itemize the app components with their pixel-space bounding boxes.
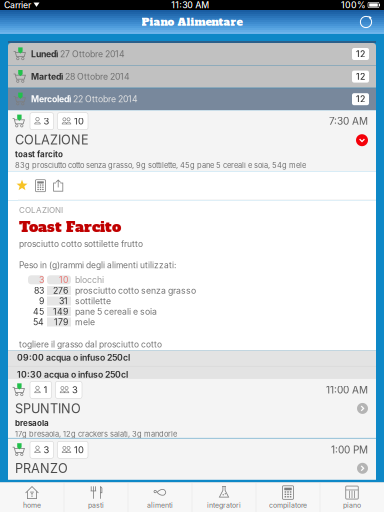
button[interactable]: pasti (64, 483, 128, 512)
staticText: Toast Farcito (19, 217, 121, 237)
staticText: 17g bresaola, 12g crackers salati, 3g ma… (15, 429, 177, 438)
button[interactable]: piano (320, 483, 384, 512)
button[interactable]: compilatore (256, 483, 320, 512)
button[interactable]: alimenti (128, 483, 192, 512)
staticText: 149 (53, 306, 68, 317)
button[interactable]: Expand SPUNTINO (357, 403, 368, 414)
button[interactable]: Mercoledì (8, 88, 376, 110)
staticText: 54 (33, 317, 44, 327)
staticText: 100% (341, 0, 366, 10)
staticText: toast farcito (15, 149, 63, 159)
staticText: home (23, 501, 41, 509)
staticText: SPUNTINO (15, 401, 81, 416)
staticText: 31 (59, 296, 68, 306)
button[interactable]: Share (53, 179, 64, 192)
staticText: alimenti (147, 501, 173, 509)
staticText: compilatore (269, 501, 307, 509)
staticText: Martedì (31, 71, 63, 82)
staticText: 12 (356, 94, 365, 104)
staticText: Mercoledì (31, 94, 71, 104)
staticText: pasti (88, 501, 104, 509)
staticText: 12 (356, 49, 365, 59)
button[interactable]: Lunedì (8, 43, 376, 65)
staticText: 7:30 AM (329, 115, 368, 127)
button[interactable]: Calculator (35, 179, 46, 192)
staticText: Piano Alimentare (141, 15, 242, 29)
staticText: prosciutto cotto sottilette frutto (19, 239, 143, 249)
staticText: bresaola (15, 418, 49, 428)
staticText: blocchi (75, 274, 104, 285)
staticText: 83g prosciutto cotto senza grasso, 9g so… (15, 161, 306, 170)
staticText: COLAZIONI (19, 205, 63, 215)
staticText: 22 Ottobre 2014 (71, 94, 138, 104)
staticText: piano (343, 501, 361, 509)
staticText: 3 (39, 274, 44, 285)
button[interactable]: Favourite (16, 180, 28, 192)
staticText: COLAZIONE (15, 132, 89, 147)
staticText: togliere il grasso dal prosciutto cotto (19, 339, 162, 349)
button[interactable]: Refresh (355, 11, 377, 33)
staticText: 9 (39, 296, 44, 306)
staticText: 3 (43, 444, 49, 455)
staticText: 28 Ottobre 2014 (63, 71, 130, 82)
staticText: 1 (43, 384, 47, 396)
staticText: 276 (53, 285, 68, 296)
staticText: prosciutto cotto senza grasso (75, 285, 196, 296)
staticText: 1:00 PM (331, 444, 368, 456)
staticText: 12 (356, 71, 365, 82)
staticText: 45 (33, 306, 44, 317)
staticText: 09:00 acqua o infuso 250cl (17, 352, 130, 363)
button[interactable]: integratori (192, 483, 256, 512)
staticText: 3 (72, 384, 78, 396)
staticText: 83 (34, 285, 44, 296)
staticText: 179 (54, 317, 68, 327)
button[interactable]: Expand PRANZO (357, 463, 368, 474)
button[interactable]: home (0, 483, 64, 512)
staticText: 10 (74, 116, 84, 127)
staticText: 10:30 acqua o infuso 250cl (17, 369, 128, 380)
staticText: mele (75, 317, 95, 327)
staticText: 3 (43, 116, 49, 127)
staticText: sottilette (75, 296, 111, 306)
staticText: pane 5 cereali e soia (75, 306, 157, 317)
staticText: PRANZO (15, 461, 68, 476)
staticText: 10 (59, 274, 68, 285)
staticText: integratori (207, 501, 241, 509)
staticText: 11:30 AM (171, 0, 209, 10)
staticText: Carrier (4, 0, 31, 10)
button[interactable]: Martedì (8, 66, 376, 88)
staticText: 27 Ottobre 2014 (58, 49, 125, 59)
staticText: 10 (74, 444, 84, 455)
button[interactable]: Collapse COLAZIONE (356, 134, 368, 146)
staticText: Lunedì (31, 49, 58, 59)
staticText: Peso in (g)rammi degli alimenti utilizza… (19, 260, 176, 270)
staticText: 11:00 AM (326, 384, 368, 396)
